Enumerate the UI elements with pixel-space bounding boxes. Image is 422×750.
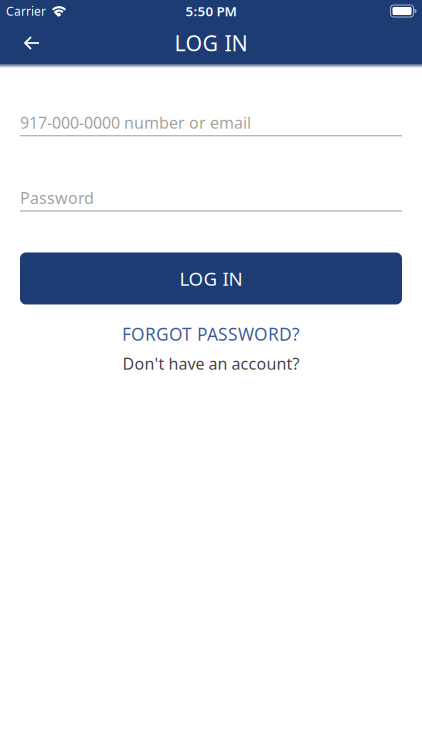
staticText: Don't have an account? [122, 353, 299, 374]
staticText: FORGOT PASSWORD? [122, 322, 300, 345]
staticText: LOG IN [174, 29, 247, 57]
staticText: Carrier [6, 3, 46, 19]
staticText: LOG IN [179, 266, 242, 291]
button[interactable]: FORGOT PASSWORD? [122, 322, 300, 345]
staticText: 917-000-0000 number or email [20, 112, 251, 133]
staticText: Password [20, 187, 94, 208]
button[interactable]: LOG IN [20, 252, 402, 304]
button[interactable]: Back [0, 22, 40, 63]
staticText: 5:50 PM [185, 2, 236, 20]
button[interactable]: 917-000-0000 number or email [20, 112, 402, 136]
button[interactable]: Password [20, 187, 402, 211]
button[interactable]: Don't have an account? [122, 353, 299, 374]
